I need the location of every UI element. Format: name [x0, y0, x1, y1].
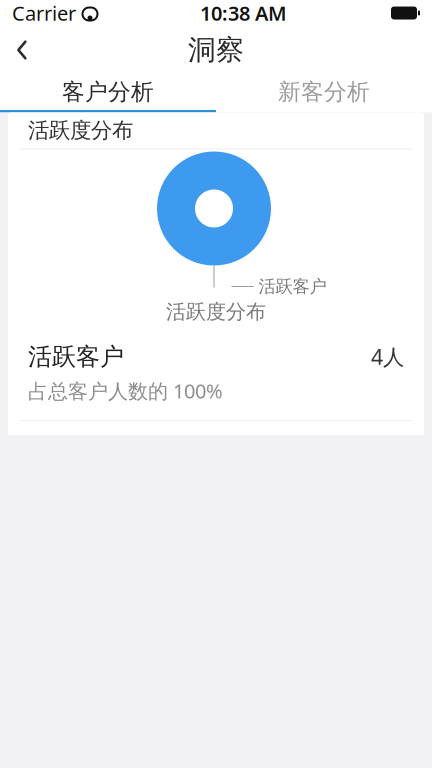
button[interactable]: 客户分析 [0, 74, 216, 110]
staticText: 活跃客户 [28, 342, 124, 372]
staticText: 活跃度分布 [28, 117, 133, 144]
staticText: 10:38 AM [200, 0, 287, 26]
staticText: 洞察 [188, 33, 244, 67]
staticText: Carrier [12, 0, 76, 26]
staticText: 客户分析 [62, 78, 154, 106]
staticText: 活跃客户 [258, 276, 326, 297]
staticText: 占总客户人数的 100% [28, 377, 223, 404]
staticText: 活跃度分布 [166, 299, 266, 324]
button[interactable]: Back [0, 28, 44, 72]
staticText: 4人 [371, 342, 404, 371]
button[interactable]: 新客分析 [216, 74, 432, 110]
staticText: 新客分析 [278, 78, 370, 106]
